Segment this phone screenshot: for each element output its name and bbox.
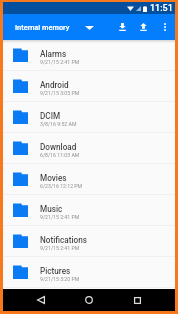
staticText: Pictures (40, 266, 71, 276)
staticText: Notifications (40, 235, 87, 245)
button[interactable]: Music (3, 195, 175, 226)
button[interactable]: DCIM (3, 102, 175, 133)
staticText: Music (40, 204, 63, 214)
staticText: 6/23/16 12:12 PM (40, 183, 83, 189)
staticText: Download (40, 142, 77, 152)
button[interactable]: Android (3, 71, 175, 102)
staticText: 9/21/15 2:41 PM (40, 214, 80, 220)
staticText: 3/8/16 9:52 AM (40, 121, 77, 127)
button[interactable]: Movies (3, 164, 175, 195)
button[interactable]: Back (30, 289, 52, 311)
button[interactable]: Recents (126, 289, 148, 311)
button[interactable]: Upload (133, 14, 154, 40)
staticText: 9/21/15 3:05 PM (40, 90, 80, 96)
button[interactable]: Alarms (3, 40, 175, 71)
button[interactable]: Pictures (3, 257, 175, 288)
staticText: 11:51 (150, 3, 173, 14)
button[interactable]: Download (3, 133, 175, 164)
staticText: Internal memory (15, 23, 70, 32)
button[interactable]: Notifications (3, 226, 175, 257)
staticText: Movies (40, 173, 67, 183)
staticText: 6/8/16 11:03 AM (40, 152, 80, 158)
button[interactable]: Download (112, 14, 133, 40)
staticText: Alarms (40, 49, 67, 59)
staticText: DCIM (40, 111, 61, 121)
staticText: 9/21/15 2:41 PM (40, 59, 80, 65)
staticText: Android (40, 80, 69, 90)
button[interactable]: Internal memory (3, 18, 98, 37)
button[interactable]: More options (154, 14, 175, 40)
staticText: 9/21/15 2:41 PM (40, 245, 80, 251)
button[interactable]: Home (78, 289, 100, 311)
staticText: 9/21/15 3:20 PM (40, 276, 80, 282)
